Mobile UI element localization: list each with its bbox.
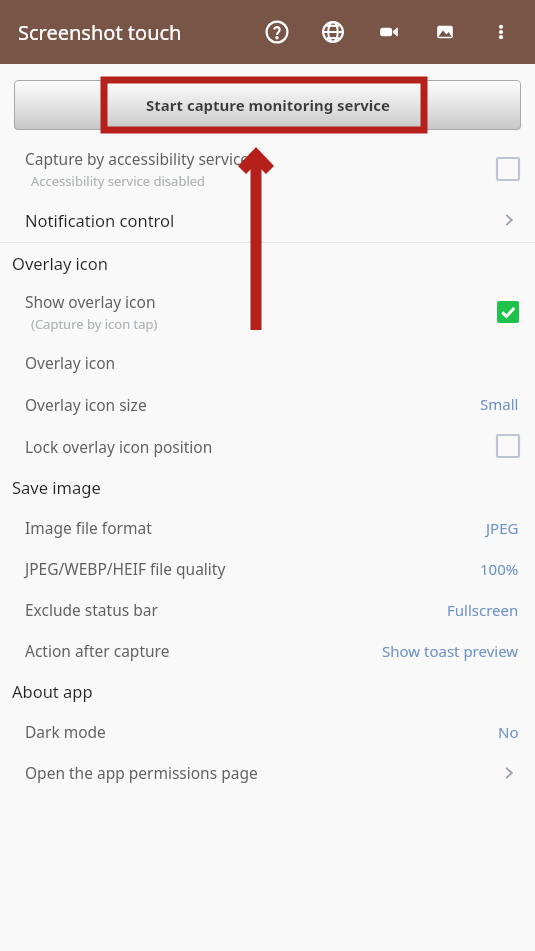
button[interactable]: Show overlay icon bbox=[0, 283, 535, 341]
staticText: Small bbox=[480, 394, 519, 414]
staticText: Overlay icon bbox=[12, 252, 108, 274]
staticText: Save image bbox=[12, 476, 101, 498]
button[interactable]: Language bbox=[305, 4, 361, 60]
staticText: Notification control bbox=[25, 209, 175, 231]
button[interactable]: Capture by accessibility service bbox=[0, 140, 535, 198]
button[interactable]: Exclude status bar bbox=[0, 589, 535, 630]
staticText: Fullscreen bbox=[447, 600, 519, 620]
staticText: Image file format bbox=[25, 517, 152, 538]
staticText: Screenshot touch bbox=[18, 19, 182, 46]
staticText: Show toast preview bbox=[382, 641, 519, 661]
staticText: 100% bbox=[480, 559, 519, 579]
button[interactable]: Action after capture bbox=[0, 630, 535, 671]
button[interactable]: Gallery bbox=[417, 4, 473, 60]
button[interactable]: Help bbox=[249, 4, 305, 60]
button[interactable]: More options bbox=[473, 4, 529, 60]
staticText: Lock overlay icon position bbox=[25, 436, 213, 457]
other: Open bbox=[499, 763, 519, 783]
staticText: JPEG/WEBP/HEIF file quality bbox=[25, 558, 226, 579]
button[interactable]: Notification control bbox=[0, 198, 535, 242]
staticText: Show overlay icon bbox=[25, 291, 156, 312]
button[interactable]: Start capture monitoring service bbox=[14, 80, 521, 130]
staticText: No bbox=[498, 722, 519, 742]
button[interactable]: JPEG/WEBP/HEIF file quality bbox=[0, 548, 535, 589]
button[interactable]: Lock overlay icon position bbox=[0, 425, 535, 467]
button[interactable]: Image file format bbox=[0, 507, 535, 548]
button[interactable]: Record video bbox=[361, 4, 417, 60]
staticText: Overlay icon bbox=[25, 352, 116, 373]
button[interactable]: Open the app permissions page bbox=[0, 752, 535, 793]
other: Open bbox=[499, 210, 519, 230]
staticText: About app bbox=[12, 680, 93, 702]
staticText: (Capture by icon tap) bbox=[31, 315, 158, 333]
button[interactable]: Checked bbox=[497, 301, 519, 323]
staticText: Accessibility service disabled bbox=[31, 172, 206, 190]
staticText: Open the app permissions page bbox=[25, 762, 258, 783]
staticText: Overlay icon size bbox=[25, 394, 147, 415]
button[interactable]: Dark mode bbox=[0, 711, 535, 752]
staticText: Dark mode bbox=[25, 721, 106, 742]
button[interactable]: Overlay icon bbox=[0, 341, 535, 383]
staticText: Exclude status bar bbox=[25, 599, 158, 620]
button[interactable]: Unchecked bbox=[497, 158, 519, 180]
staticText: JPEG bbox=[486, 518, 519, 538]
staticText: Capture by accessibility service bbox=[25, 148, 250, 169]
staticText: Start capture monitoring service bbox=[146, 95, 390, 115]
staticText: Action after capture bbox=[25, 640, 170, 661]
button[interactable]: Overlay icon size bbox=[0, 383, 535, 425]
button[interactable]: Unchecked bbox=[497, 435, 519, 457]
